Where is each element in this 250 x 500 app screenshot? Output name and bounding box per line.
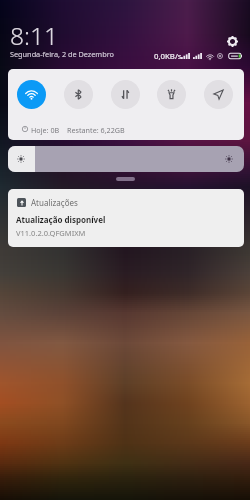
button[interactable]: Bluetooth — [64, 80, 93, 109]
staticText: Atualização disponível — [16, 214, 106, 225]
button[interactable]: Mobile data — [111, 80, 140, 109]
button[interactable]: Wi-Fi — [17, 80, 46, 109]
staticText: 8:11 — [10, 19, 58, 52]
staticText: Segunda-feira, 2 de Dezembro — [10, 49, 114, 59]
staticText: 0,0KB/s — [154, 51, 182, 62]
button[interactable]: Brightness — [8, 146, 244, 172]
button[interactable]: Atualizações — [8, 189, 244, 247]
staticText: Atualizações — [31, 197, 78, 208]
button[interactable]: Flashlight — [157, 80, 186, 109]
button[interactable]: Location — [204, 80, 233, 109]
button[interactable]: Settings — [226, 35, 239, 48]
staticText: V11.0.2.0.QFGMIXM — [16, 228, 86, 238]
staticText: Restante: 6,22GB — [67, 125, 125, 135]
staticText: Hoje: 0B — [31, 125, 60, 135]
